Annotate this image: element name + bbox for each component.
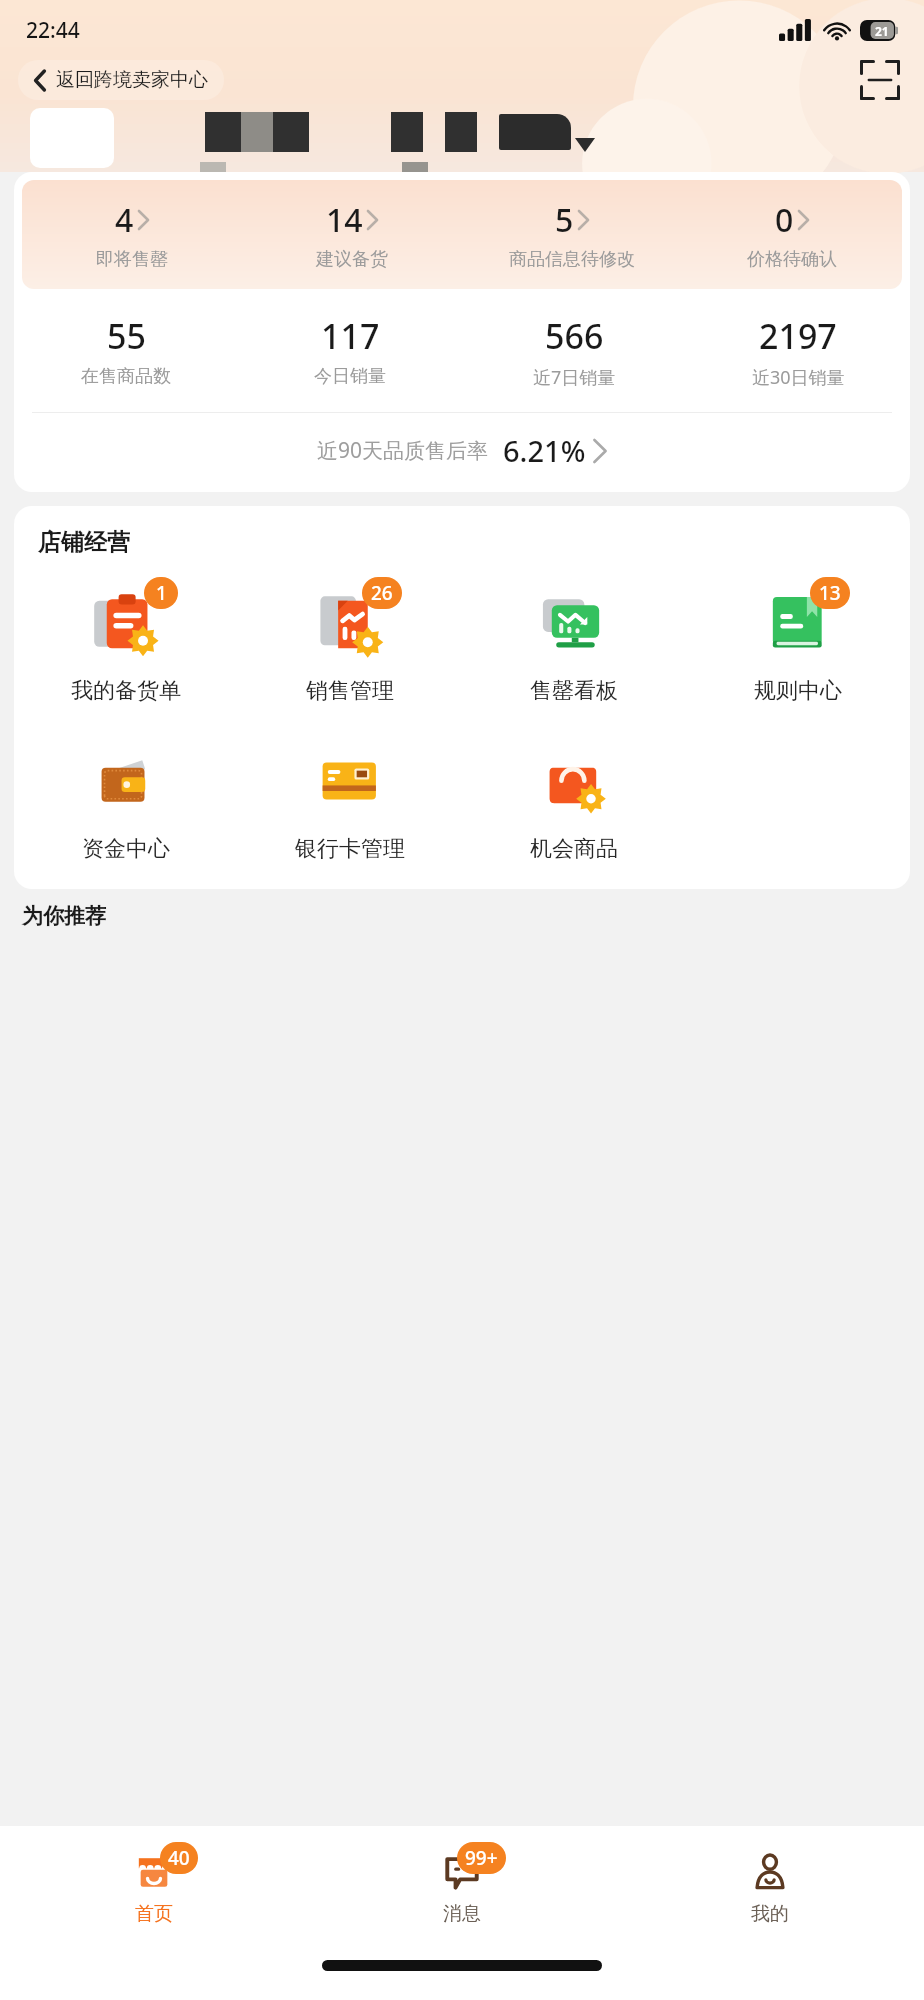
staticText: 22:44 xyxy=(26,16,80,45)
staticText: 5 xyxy=(555,198,574,242)
button[interactable]: 2197 xyxy=(686,313,910,390)
staticText: 机会商品 xyxy=(530,835,618,863)
staticText: 21 xyxy=(875,23,889,39)
button[interactable]: 26 xyxy=(238,581,462,705)
button[interactable]: 566 xyxy=(462,313,686,390)
button[interactable]: 13 xyxy=(686,581,910,705)
button[interactable]: 117 xyxy=(238,313,462,388)
staticText: 26 xyxy=(371,580,393,606)
button[interactable]: Scan xyxy=(858,58,902,102)
button[interactable]: 我的 xyxy=(616,1826,924,1944)
staticText: 2197 xyxy=(759,313,837,359)
staticText: 返回跨境卖家中心 xyxy=(56,68,208,92)
button[interactable]: 近90天品质售后率 xyxy=(14,413,910,488)
button[interactable]: 5 xyxy=(462,198,682,271)
staticText: 近30日销量 xyxy=(752,365,845,390)
staticText: 近7日销量 xyxy=(533,365,616,390)
staticText: 55 xyxy=(107,313,146,359)
button[interactable]: 99+ xyxy=(308,1826,616,1944)
staticText: 为你推荐 xyxy=(22,903,106,929)
staticText: 我的 xyxy=(751,1902,789,1926)
staticText: 40 xyxy=(168,1845,190,1871)
staticText: 13 xyxy=(819,580,841,606)
staticText: 今日销量 xyxy=(314,365,386,388)
staticText: 首页 xyxy=(135,1902,173,1926)
staticText: 建议备货 xyxy=(316,248,388,271)
staticText: 99+ xyxy=(465,1845,498,1871)
button[interactable]: 银行卡管理 xyxy=(238,739,462,863)
button[interactable]: 14 xyxy=(242,198,462,271)
staticText: 销售管理 xyxy=(306,677,394,705)
staticText: 银行卡管理 xyxy=(295,835,405,863)
staticText: 1 xyxy=(156,580,167,606)
staticText: 14 xyxy=(326,198,363,242)
staticText: 商品信息待修改 xyxy=(509,248,635,271)
button[interactable]: 资金中心 xyxy=(14,739,238,863)
button[interactable]: 0 xyxy=(682,198,902,271)
staticText: 近90天品质售后率 xyxy=(317,436,489,465)
staticText: 117 xyxy=(321,313,380,359)
staticText: 在售商品数 xyxy=(81,365,171,388)
staticText: 消息 xyxy=(443,1902,481,1926)
staticText: 6.21% xyxy=(503,431,586,470)
staticText: 店铺经营 xyxy=(38,528,130,557)
button[interactable]: 1 xyxy=(14,581,238,705)
button[interactable]: 返回跨境卖家中心 xyxy=(18,60,224,100)
staticText: 566 xyxy=(545,313,604,359)
staticText: 规则中心 xyxy=(754,677,842,705)
staticText: 价格待确认 xyxy=(747,248,837,271)
staticText: 售罄看板 xyxy=(530,677,618,705)
button[interactable]: 4 xyxy=(22,198,242,271)
button[interactable]: 40 xyxy=(0,1826,308,1944)
staticText: 资金中心 xyxy=(82,835,170,863)
staticText: 0 xyxy=(775,198,794,242)
staticText: 我的备货单 xyxy=(71,677,181,705)
button[interactable]: 机会商品 xyxy=(462,739,686,863)
button[interactable]: 55 xyxy=(14,313,238,388)
staticText: 即将售罄 xyxy=(96,248,168,271)
button[interactable]: 售罄看板 xyxy=(462,581,686,705)
staticText: 4 xyxy=(115,198,134,242)
